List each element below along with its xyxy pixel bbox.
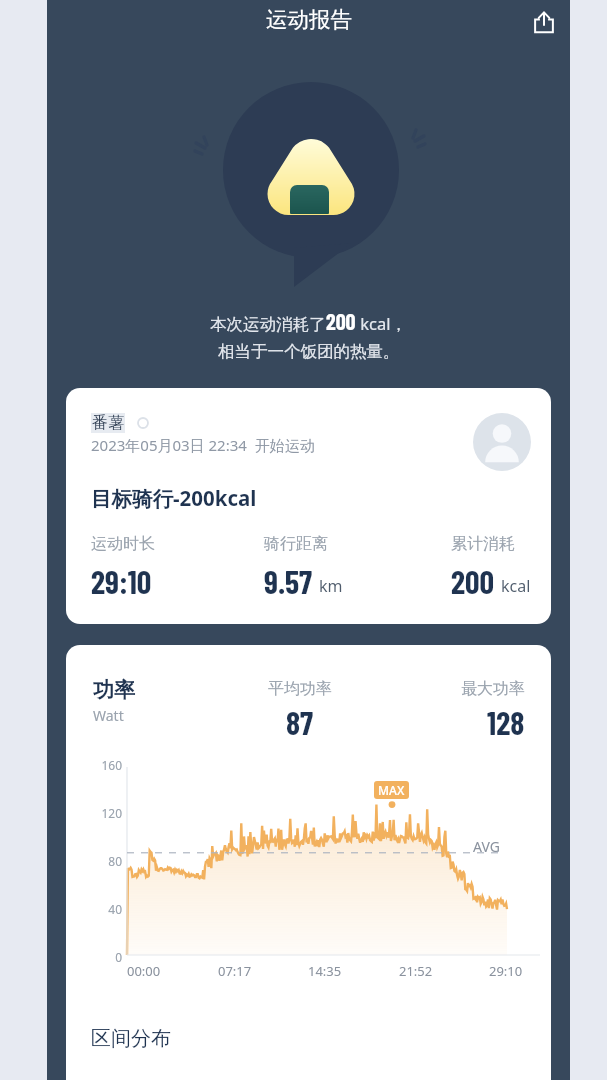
staticText: 运动报告 [266,6,352,33]
staticText: kcal， [356,312,408,335]
staticText: 0 [88,949,122,965]
staticText: 相当于一个饭团的热量。 [218,341,400,362]
staticText: 21:52 [399,962,433,980]
staticText: 最大功率 [461,679,525,699]
staticText: 累计消耗 [451,534,515,554]
staticText: 128 [487,703,525,741]
staticText: AVG [473,837,500,856]
staticText: 运动时长 [91,534,155,554]
staticText: 160 [88,757,122,773]
staticText: 200 [451,562,495,600]
staticText: 番薯 [92,413,124,433]
staticText: 平均功率 [268,679,332,699]
staticText: 区间分布 [91,1026,171,1051]
staticText: 40 [88,901,122,917]
staticText: 14:35 [308,962,342,980]
staticText: 骑行距离 [264,534,328,554]
staticText: 功率 [93,677,135,703]
button[interactable]: 番薯 [66,388,551,624]
staticText: 00:00 [127,962,161,980]
staticText: km [319,575,343,597]
staticText: kcal [501,575,531,597]
staticText: 87 [286,703,314,741]
staticText: MAX [378,782,405,798]
staticText: Watt [93,706,124,725]
staticText: 29:10 [91,562,152,600]
staticText: 120 [88,805,122,821]
staticText: 80 [88,853,122,869]
staticText: 07:17 [218,962,252,980]
staticText: 2023年05月03日 22:34 开始运动 [91,435,315,455]
button[interactable]: 功率 [66,645,551,1080]
button[interactable]: Share [524,2,564,42]
staticText: 目标骑行-200kcal [91,484,257,512]
staticText: 本次运动消耗了 [210,314,326,335]
staticText: 200 [326,308,356,334]
staticText: 9.57 [264,562,313,600]
staticText: 29:10 [489,962,523,980]
